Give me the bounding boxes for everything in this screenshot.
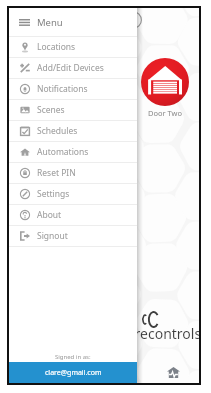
button[interactable]: Reset PIN — [9, 163, 137, 183]
staticText: Notifications — [37, 83, 88, 95]
staticText: Automations — [37, 146, 89, 158]
button[interactable]: Settings — [9, 184, 137, 204]
staticText: Scenes — [37, 104, 65, 116]
staticText: Add/Edit Devices — [37, 62, 104, 74]
staticText: Signout — [37, 230, 68, 242]
button[interactable]: Home — [160, 357, 186, 383]
button[interactable]: Schedules — [9, 121, 137, 141]
button[interactable]: clare@gmail.com — [9, 362, 137, 383]
button[interactable]: Signout — [9, 226, 137, 246]
staticText: morecontrols — [113, 324, 199, 343]
staticText: clare@gmail.com — [45, 368, 102, 378]
button[interactable]: About — [9, 205, 137, 225]
button[interactable]: Menu — [9, 8, 137, 36]
staticText: Locations — [37, 41, 76, 53]
staticText: About — [37, 209, 62, 221]
staticText: Door Two — [148, 108, 183, 118]
button[interactable]: Scenes — [9, 100, 137, 120]
staticText: Schedules — [37, 125, 78, 137]
button[interactable]: Locations — [9, 37, 137, 57]
button[interactable]: Door Two — [141, 58, 189, 106]
staticText: Settings — [37, 188, 70, 200]
staticText: Menu — [37, 16, 63, 29]
button[interactable]: Automations — [9, 142, 137, 162]
staticText: Reset PIN — [37, 167, 76, 179]
button[interactable]: Notifications — [9, 79, 137, 99]
staticText: Signed in as: — [55, 353, 91, 361]
button[interactable]: Add/Edit Devices — [9, 58, 137, 78]
